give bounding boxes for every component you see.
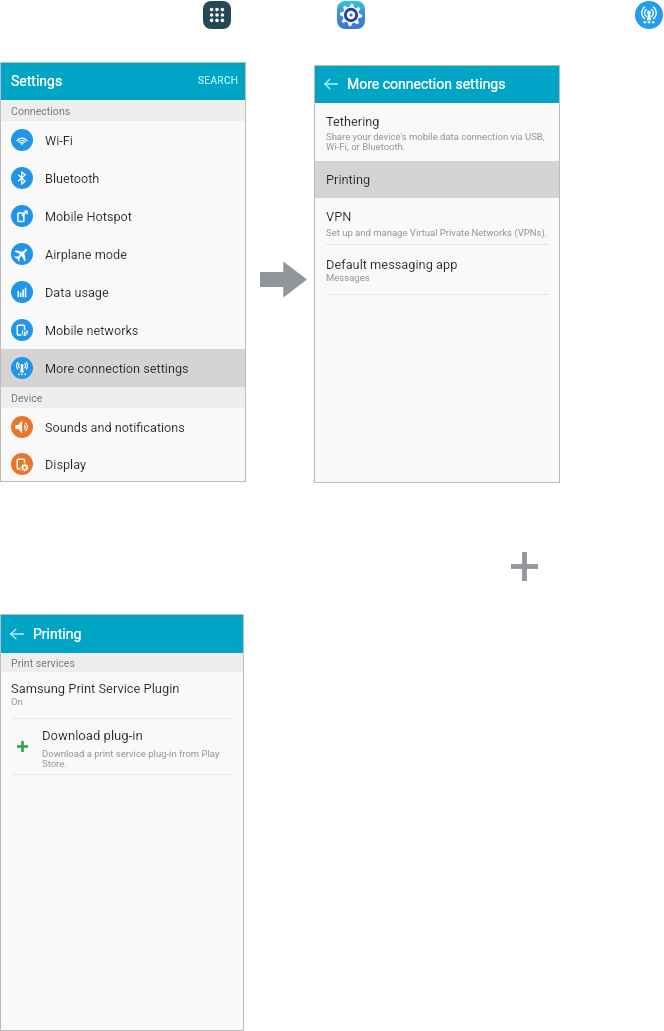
button[interactable] bbox=[314, 245, 560, 294]
button[interactable]: Settings bbox=[0, 62, 246, 100]
staticText: Display bbox=[45, 457, 86, 472]
staticText: Sounds and notifications bbox=[45, 420, 185, 435]
staticText: Set up and manage Virtual Private Networ… bbox=[326, 227, 548, 238]
staticText: On bbox=[11, 696, 23, 707]
staticText: Bluetooth bbox=[45, 171, 100, 186]
staticText: Airplane mode bbox=[45, 247, 127, 262]
button[interactable]: Mobile Hotspot bbox=[0, 197, 246, 235]
staticText: Download plug-in bbox=[42, 728, 143, 743]
staticText: Download a print service plug-in from Pl… bbox=[42, 748, 220, 770]
staticText: Default messaging app bbox=[326, 257, 458, 272]
button[interactable] bbox=[314, 198, 560, 244]
button[interactable]: Display bbox=[0, 446, 246, 482]
staticText: Tethering bbox=[326, 114, 380, 129]
staticText: Messages bbox=[326, 272, 370, 283]
button[interactable]: Airplane mode bbox=[0, 235, 246, 273]
button[interactable]: Settings bbox=[337, 1, 365, 29]
button[interactable] bbox=[0, 719, 244, 774]
button[interactable]: Apps bbox=[203, 1, 231, 29]
staticText: Printing bbox=[326, 172, 371, 187]
other: Back bbox=[10, 627, 24, 641]
staticText: VPN bbox=[326, 209, 352, 224]
button[interactable]: Wi-Fi bbox=[0, 121, 246, 159]
staticText: Data usage bbox=[45, 285, 109, 300]
staticText: Samsung Print Service Plugin bbox=[11, 681, 180, 696]
button[interactable] bbox=[314, 161, 560, 198]
staticText: Connections bbox=[11, 105, 71, 117]
staticText: Device bbox=[11, 392, 43, 404]
staticText: Print services bbox=[11, 657, 75, 669]
button[interactable]: Bluetooth bbox=[0, 159, 246, 197]
button[interactable] bbox=[0, 672, 244, 718]
button[interactable]: Back bbox=[0, 614, 244, 653]
staticText: More connection settings bbox=[45, 361, 189, 376]
staticText: Share your device's mobile data connecti… bbox=[326, 131, 545, 153]
button[interactable]: More connection settings bbox=[0, 349, 246, 387]
other: Add bbox=[511, 552, 538, 581]
staticText: More connection settings bbox=[347, 76, 506, 92]
button[interactable] bbox=[314, 103, 560, 161]
staticText: Wi-Fi bbox=[45, 133, 73, 148]
button[interactable]: More connection settings bbox=[635, 1, 663, 29]
button[interactable]: Sounds and notifications bbox=[0, 408, 246, 446]
staticText: Settings bbox=[11, 73, 63, 89]
staticText: Printing bbox=[33, 626, 82, 642]
button[interactable]: Data usage bbox=[0, 273, 246, 311]
staticText: Mobile networks bbox=[45, 323, 139, 338]
other: Back bbox=[324, 77, 338, 91]
staticText: Mobile Hotspot bbox=[45, 209, 132, 224]
other: Next step bbox=[260, 261, 307, 298]
staticText: SEARCH bbox=[198, 75, 239, 87]
button[interactable]: Mobile networks bbox=[0, 311, 246, 349]
button[interactable]: Back bbox=[314, 65, 560, 103]
